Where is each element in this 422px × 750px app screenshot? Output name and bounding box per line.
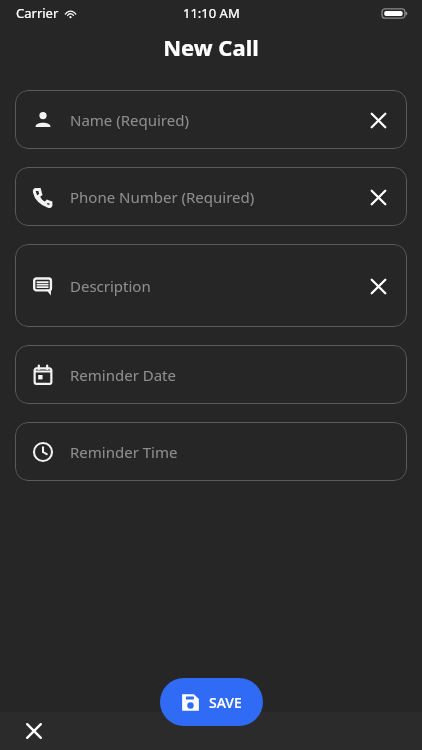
staticText: Reminder Date: [70, 365, 176, 385]
button[interactable]: Phone Number (Required): [15, 167, 407, 226]
button[interactable]: Reminder Date: [15, 345, 407, 404]
staticText: Carrier: [16, 4, 59, 22]
staticText: Phone Number (Required): [70, 187, 255, 207]
staticText: Reminder Time: [70, 442, 178, 462]
button[interactable]: Clear Phone Number (Required): [359, 178, 397, 216]
button[interactable]: SAVE: [160, 678, 263, 726]
staticText: Description: [70, 276, 151, 296]
button[interactable]: Name (Required): [15, 90, 407, 149]
button[interactable]: Clear Name (Required): [359, 101, 397, 139]
button[interactable]: Close: [14, 712, 54, 750]
button[interactable]: Description: [15, 244, 407, 327]
staticText: Name (Required): [70, 110, 189, 130]
button[interactable]: Reminder Time: [15, 422, 407, 481]
button[interactable]: Clear Description: [359, 267, 397, 305]
staticText: 11:10 AM: [183, 4, 240, 22]
staticText: New Call: [163, 32, 259, 62]
staticText: SAVE: [209, 693, 242, 712]
